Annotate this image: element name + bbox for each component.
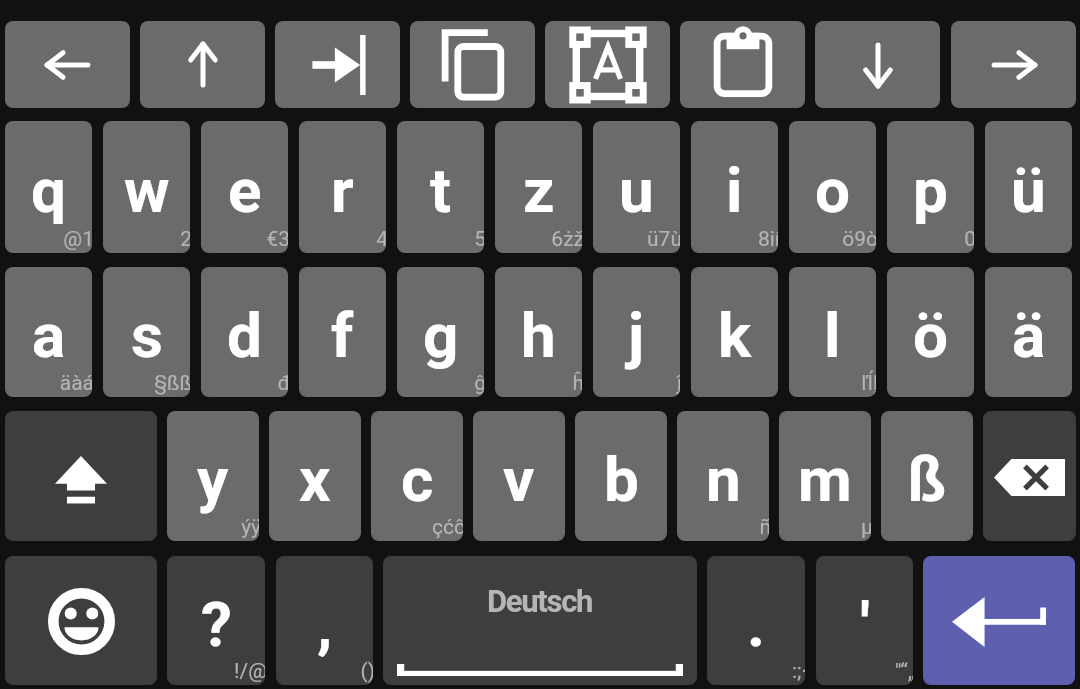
button[interactable]: , <box>276 556 373 685</box>
button[interactable]: Tab <box>275 21 400 108</box>
staticText: §ßß <box>154 371 190 396</box>
button[interactable]: t <box>397 121 484 253</box>
button[interactable]: Emoji <box>5 556 157 685</box>
staticText: ñ <box>759 515 769 540</box>
staticText: ö9ò <box>842 227 876 252</box>
staticText: d <box>227 299 262 372</box>
staticText: ö <box>913 299 948 372</box>
button[interactable]: Paste <box>680 21 805 108</box>
staticText: c <box>401 443 434 516</box>
button[interactable]: ? <box>167 556 265 685</box>
staticText: b <box>604 443 639 516</box>
button[interactable]: f <box>299 267 386 397</box>
button[interactable]: r <box>299 121 386 253</box>
button[interactable]: Back <box>5 21 130 108</box>
button[interactable]: ä <box>985 267 1072 397</box>
button[interactable]: s <box>103 267 190 397</box>
button[interactable]: y <box>167 411 259 541</box>
staticText: m <box>798 443 852 516</box>
staticText: €3 <box>266 227 288 252</box>
staticText: w <box>124 154 170 227</box>
button[interactable]: Enter <box>923 556 1075 685</box>
staticText: a <box>32 299 66 372</box>
staticText: ü <box>1011 154 1046 227</box>
button[interactable]: c <box>371 411 463 541</box>
staticText: đ <box>277 371 288 396</box>
button[interactable]: ' <box>816 556 913 685</box>
button[interactable]: Shift <box>5 411 157 541</box>
staticText: µ <box>861 515 871 540</box>
button[interactable]: z <box>495 121 582 253</box>
staticText: 5 <box>474 227 484 252</box>
button[interactable]: i <box>691 121 778 253</box>
staticText: q <box>31 154 66 227</box>
staticText: äàá <box>59 371 92 396</box>
staticText: 2 <box>180 227 190 252</box>
button[interactable]: Down <box>815 21 940 108</box>
button[interactable]: Backspace <box>983 411 1076 541</box>
button[interactable]: o <box>789 121 876 253</box>
staticText: çćĉ <box>432 515 463 540</box>
staticText: v <box>503 443 535 516</box>
button[interactable]: a <box>5 267 92 397</box>
staticText: 0 <box>964 227 974 252</box>
staticText: g <box>423 299 459 372</box>
button[interactable]: Select all <box>545 21 670 108</box>
button[interactable]: Up <box>140 21 265 108</box>
button[interactable]: ü <box>985 121 1072 253</box>
staticText: i <box>726 154 743 227</box>
staticText: ? <box>201 588 232 661</box>
button[interactable]: m <box>779 411 871 541</box>
staticText: y <box>197 443 229 516</box>
staticText: ĝ <box>474 371 484 396</box>
button[interactable]: b <box>575 411 667 541</box>
button[interactable]: Copy <box>410 21 535 108</box>
button[interactable]: d <box>201 267 288 397</box>
staticText: ' <box>860 588 870 661</box>
staticText: Deutsch <box>487 583 593 619</box>
button[interactable]: w <box>103 121 190 253</box>
staticText: @1 <box>63 227 92 252</box>
staticText: () <box>360 659 373 684</box>
button[interactable]: x <box>269 411 361 541</box>
staticText: 8ií <box>757 227 778 252</box>
staticText: n <box>706 443 741 516</box>
staticText: . <box>747 588 765 661</box>
button[interactable]: ß <box>881 411 973 541</box>
button[interactable]: l <box>789 267 876 397</box>
button[interactable]: e <box>201 121 288 253</box>
staticText: t <box>430 154 451 227</box>
button[interactable]: j <box>593 267 680 397</box>
staticText: 4 <box>376 227 386 252</box>
staticText: 6żž <box>551 227 582 252</box>
button[interactable]: ö <box>887 267 974 397</box>
staticText: k <box>718 299 752 372</box>
staticText: ĥ <box>572 371 582 396</box>
staticText: e <box>228 154 262 227</box>
staticText: ľĺļ <box>861 371 876 396</box>
staticText: ü7ù <box>647 227 680 252</box>
button[interactable]: k <box>691 267 778 397</box>
staticText: p <box>913 154 948 227</box>
button[interactable]: g <box>397 267 484 397</box>
staticText: ĵ <box>676 371 680 396</box>
button[interactable]: v <box>473 411 565 541</box>
staticText: x <box>299 443 331 516</box>
staticText: ä <box>1012 299 1046 372</box>
staticText: ß <box>907 443 947 516</box>
button[interactable]: q <box>5 121 92 253</box>
button[interactable]: Space <box>383 556 697 685</box>
button[interactable]: n <box>677 411 769 541</box>
button[interactable]: Forward <box>951 21 1076 108</box>
button[interactable]: u <box>593 121 680 253</box>
button[interactable]: . <box>707 556 805 685</box>
staticText: o <box>815 154 850 227</box>
staticText: :;· <box>791 659 805 684</box>
staticText: !/@ <box>234 659 265 684</box>
button[interactable]: p <box>887 121 974 253</box>
staticText: "“„ <box>894 659 913 684</box>
button[interactable]: h <box>495 267 582 397</box>
staticText: z <box>523 154 555 227</box>
staticText: ýÿ <box>241 515 259 540</box>
staticText: s <box>131 299 163 372</box>
